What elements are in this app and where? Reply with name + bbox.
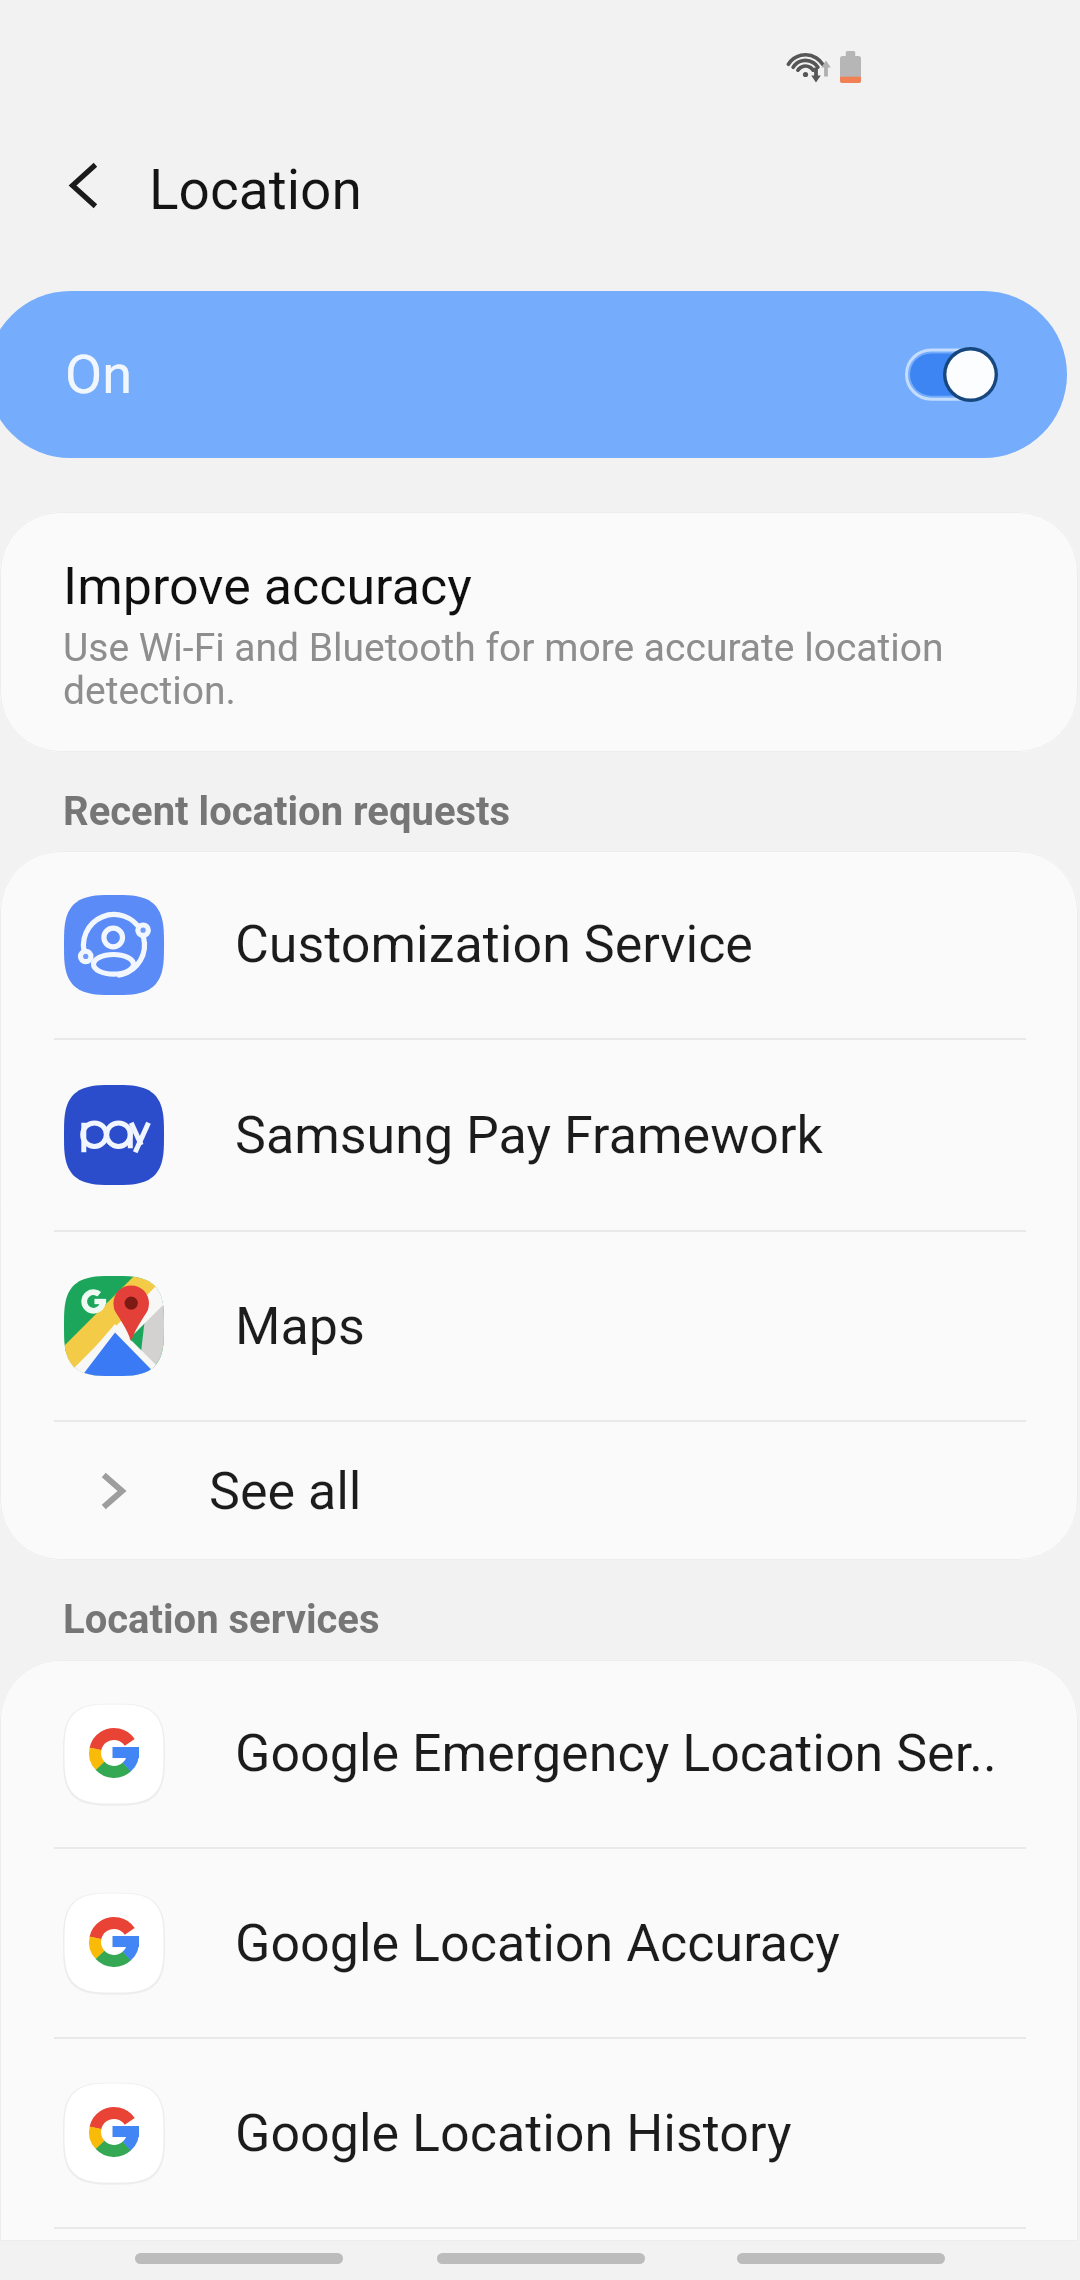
button[interactable]: Back: [39, 141, 127, 229]
staticText: Samsung Pay Framework: [235, 1105, 823, 1166]
button[interactable]: Customization Service: [0, 851, 1078, 1038]
button[interactable]: On: [0, 291, 1067, 458]
button[interactable]: Google Location Accuracy: [0, 1849, 1078, 2037]
staticText: On: [65, 343, 132, 406]
button[interactable]: Samsung Pay Framework: [0, 1040, 1078, 1230]
staticText: Google Emergency Location Ser..: [235, 1723, 997, 1784]
staticText: Improve accuracy: [63, 556, 472, 617]
button[interactable]: Recents: [135, 2244, 343, 2272]
staticText: Google Location History: [235, 2103, 792, 2164]
button[interactable]: Back: [737, 2244, 945, 2272]
staticText: Recent location requests: [63, 788, 511, 835]
staticText: Maps: [235, 1296, 365, 1357]
button[interactable]: Google Location History: [0, 2039, 1078, 2227]
staticText: Use Wi-Fi and Bluetooth for more accurat…: [63, 625, 1036, 714]
staticText: Customization Service: [235, 914, 753, 975]
button[interactable]: Google Emergency Location Ser..: [0, 1660, 1078, 1847]
staticText: See all: [209, 1461, 362, 1522]
staticText: Google Location Accuracy: [235, 1913, 840, 1974]
button[interactable]: See all: [0, 1422, 1078, 1560]
button[interactable]: Improve accuracy: [0, 512, 1078, 752]
button[interactable]: Maps: [0, 1232, 1078, 1420]
staticText: Location: [149, 158, 362, 222]
staticText: Location services: [63, 1596, 380, 1643]
button[interactable]: Home: [437, 2244, 645, 2272]
